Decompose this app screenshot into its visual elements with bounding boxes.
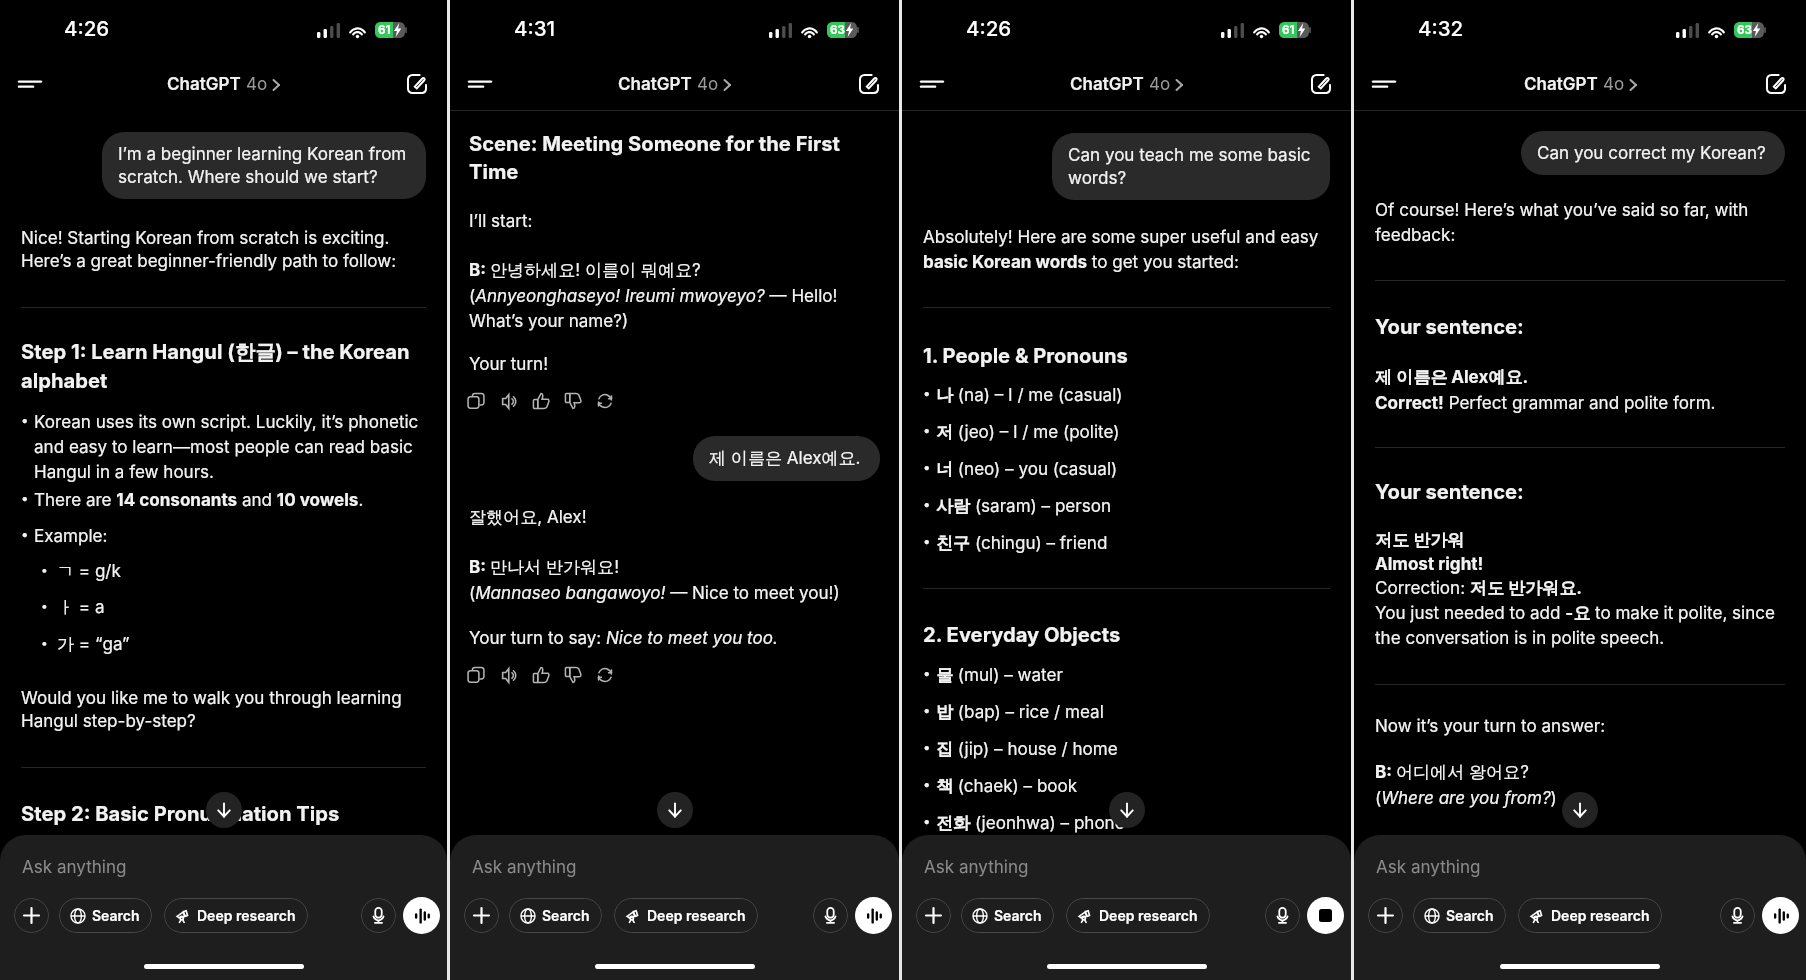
staticText: 너 (neo) – you (casual) — [936, 458, 1118, 480]
staticText: Nice! Starting Korean from scratch is ex… — [21, 227, 426, 271]
button[interactable]: Bad response — [558, 660, 588, 690]
button[interactable]: New chat — [1303, 66, 1339, 102]
button[interactable]: New chat — [851, 66, 887, 102]
button[interactable]: Deep research — [164, 898, 308, 933]
button[interactable]: Scroll to bottom — [657, 792, 693, 828]
staticText: Now it’s your turn to answer: — [1375, 715, 1606, 736]
staticText: Scene: Meeting Someone for the First Tim… — [469, 131, 840, 184]
button[interactable]: Regenerate — [590, 660, 620, 690]
staticText: 사람 (saram) – person — [936, 495, 1112, 517]
button[interactable]: Dictate — [813, 898, 848, 933]
staticText: Deep research — [197, 907, 296, 924]
staticText: Of course! Here’s what you’ve said so fa… — [1375, 199, 1749, 245]
button[interactable]: ChatGPT — [614, 68, 735, 101]
button[interactable]: Dictate — [1720, 898, 1755, 933]
button[interactable]: Ask anything — [902, 835, 1351, 897]
staticText: Search — [994, 907, 1042, 924]
button[interactable]: Good response — [526, 386, 556, 416]
staticText: B: 어디에서 왕어요? (Where are you from?) — [1375, 761, 1557, 808]
button[interactable]: Menu — [914, 66, 950, 102]
staticText: Ask anything — [22, 856, 127, 877]
staticText: ChatGPT — [167, 74, 241, 95]
staticText: Absolutely! Here are some super useful a… — [923, 226, 1319, 272]
button[interactable]: Read aloud — [494, 660, 524, 690]
staticText: Step 1: Learn Hangul (한글) – the Korean a… — [21, 339, 410, 393]
staticText: Ask anything — [472, 856, 577, 877]
staticText: • — [923, 739, 936, 755]
button[interactable]: ChatGPT — [163, 68, 284, 101]
button[interactable]: Search — [1413, 898, 1506, 933]
staticText: • — [923, 702, 936, 718]
button[interactable]: Add attachment — [14, 898, 49, 933]
button[interactable]: Add attachment — [464, 898, 499, 933]
button[interactable]: Deep research — [614, 898, 758, 933]
button[interactable]: Ask anything — [1354, 835, 1806, 897]
button[interactable]: ChatGPT — [1520, 68, 1641, 101]
staticText: 나 (na) – I / me (casual) — [936, 384, 1123, 406]
staticText: Ask anything — [924, 856, 1029, 877]
staticText: • — [41, 562, 57, 576]
staticText: 4:31 — [514, 16, 556, 41]
staticText: ㅏ = a — [57, 596, 105, 618]
button[interactable]: 제 이름은 Alex예요. — [693, 436, 880, 481]
staticText: Search — [92, 907, 140, 924]
button[interactable]: Menu — [1366, 66, 1402, 102]
staticText: 4:26 — [966, 16, 1012, 41]
button[interactable]: Voice mode — [1762, 897, 1799, 934]
staticText: Can you correct my Korean? — [1537, 142, 1766, 163]
button[interactable]: Add attachment — [916, 898, 951, 933]
button[interactable]: Search — [59, 898, 152, 933]
button[interactable]: Voice mode — [855, 897, 892, 934]
staticText: • — [923, 776, 936, 792]
button[interactable]: Voice mode — [403, 897, 440, 934]
staticText: B: 안녕하세요! 이름이 뭐예요? (Annyeonghaseyo! Ireu… — [469, 259, 838, 331]
button[interactable]: Good response — [526, 660, 556, 690]
button[interactable]: Scroll to bottom — [1562, 792, 1598, 828]
staticText: • — [21, 526, 34, 542]
staticText: Your turn to say: Nice to meet you too. — [469, 627, 778, 648]
button[interactable]: Can you correct my Korean? — [1521, 131, 1785, 175]
button[interactable]: Ask anything — [450, 835, 899, 897]
button[interactable]: Read aloud — [494, 386, 524, 416]
staticText: 4o — [1603, 74, 1625, 95]
staticText: Example: — [34, 525, 108, 546]
staticText: 4o — [1149, 74, 1171, 95]
button[interactable]: ChatGPT — [1066, 68, 1187, 101]
staticText: 잘했어요, Alex! — [469, 506, 587, 528]
staticText: • — [21, 412, 34, 428]
button[interactable]: Ask anything — [0, 835, 447, 897]
staticText: B: 만나서 반가워요! (Mannaseo bangawoyo! — Nice… — [469, 556, 840, 603]
button[interactable]: Deep research — [1066, 898, 1210, 933]
staticText: 61 — [378, 23, 391, 37]
button[interactable]: Menu — [462, 66, 498, 102]
staticText: • — [21, 490, 34, 506]
staticText: 1. People & Pronouns — [923, 343, 1128, 367]
button[interactable]: Menu — [12, 66, 48, 102]
staticText: 책 (chaek) – book — [936, 775, 1078, 797]
button[interactable]: Scroll to bottom — [206, 792, 242, 828]
button[interactable]: Copy — [461, 660, 491, 690]
staticText: Deep research — [647, 907, 746, 924]
staticText: Korean uses its own script. Luckily, it’… — [34, 411, 426, 482]
button[interactable]: Search — [509, 898, 602, 933]
button[interactable]: New chat — [1758, 66, 1794, 102]
button[interactable]: Copy — [461, 386, 491, 416]
button[interactable]: Stop — [1307, 897, 1344, 934]
button[interactable]: Search — [961, 898, 1054, 933]
button[interactable]: New chat — [399, 66, 435, 102]
staticText: 가 = “ga” — [57, 633, 130, 655]
button[interactable]: Bad response — [558, 386, 588, 416]
staticText: I’m a beginner learning Korean from scra… — [118, 143, 407, 187]
button[interactable]: Dictate — [361, 898, 396, 933]
button[interactable]: Scroll to bottom — [1109, 792, 1145, 828]
staticText: 4o — [697, 74, 719, 95]
staticText: • — [923, 813, 936, 829]
button[interactable]: Dictate — [1265, 898, 1300, 933]
button[interactable]: Deep research — [1518, 898, 1662, 933]
staticText: • — [923, 496, 936, 512]
button[interactable]: Add attachment — [1368, 898, 1403, 933]
staticText: 제 이름은 Alex예요. Correct! Perfect grammar a… — [1375, 366, 1716, 413]
button[interactable]: Can you teach me some basic words? — [1052, 133, 1330, 200]
button[interactable]: Regenerate — [590, 386, 620, 416]
button[interactable]: I’m a beginner learning Korean from scra… — [102, 132, 426, 199]
